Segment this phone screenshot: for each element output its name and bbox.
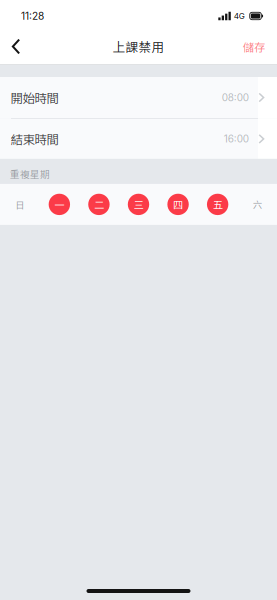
button[interactable]: 六	[237, 184, 277, 225]
staticText: 二	[94, 197, 104, 212]
staticText: 儲存	[243, 38, 265, 55]
staticText: 上課禁用	[112, 37, 164, 55]
staticText: 三	[133, 197, 143, 212]
staticText: 日	[15, 198, 24, 211]
staticText: 結束時間	[10, 130, 58, 148]
staticText: 11:28	[21, 10, 44, 22]
staticText: 重複星期	[10, 167, 50, 181]
staticText: 四	[173, 197, 183, 212]
button[interactable]: 二	[79, 184, 119, 225]
staticText: 開始時間	[10, 88, 58, 106]
staticText: 五	[213, 197, 223, 212]
staticText: 4G	[234, 11, 245, 21]
button[interactable]: 五	[198, 184, 237, 225]
staticText: 16:00	[224, 133, 249, 145]
button[interactable]: 四	[158, 184, 198, 225]
button[interactable]: 一	[40, 184, 79, 225]
staticText: 六	[253, 198, 262, 211]
staticText: 一	[54, 197, 64, 212]
button[interactable]: 日	[0, 184, 40, 225]
button[interactable]: 開始時間	[0, 77, 277, 118]
button[interactable]: 結束時間	[0, 119, 277, 159]
button[interactable]: 三	[119, 184, 158, 225]
button[interactable]: Back	[0, 28, 32, 65]
staticText: 08:00	[222, 91, 249, 104]
button[interactable]: 儲存	[243, 28, 277, 65]
